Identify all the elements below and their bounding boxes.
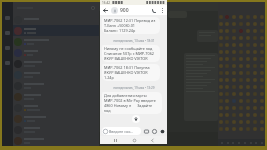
button[interactable]: Attach file bbox=[143, 128, 149, 134]
button[interactable]: Emoji bbox=[224, 76, 230, 83]
button[interactable]: Emoji bbox=[230, 118, 237, 125]
button[interactable]: Emoji bbox=[224, 111, 230, 118]
button[interactable]: Emoji bbox=[218, 13, 224, 20]
button[interactable]: Emoji bbox=[230, 104, 237, 111]
button[interactable]: Emoji bbox=[244, 55, 251, 62]
button[interactable]: Emoji bbox=[230, 90, 237, 97]
button[interactable]: Emoji bbox=[224, 41, 230, 48]
button[interactable]: Send bbox=[159, 128, 165, 134]
button[interactable]: More options bbox=[160, 8, 165, 13]
button[interactable]: Sticker bbox=[151, 128, 157, 134]
button[interactable]: Emoji bbox=[244, 13, 251, 20]
button[interactable]: Emoji bbox=[237, 27, 244, 34]
button[interactable]: Emoji bbox=[218, 20, 224, 27]
button[interactable]: Emoji bbox=[251, 76, 258, 83]
button[interactable]: Emoji bbox=[230, 20, 237, 27]
button[interactable]: Emoji bbox=[237, 118, 244, 125]
button[interactable]: Emoji bbox=[251, 118, 258, 125]
button[interactable]: Emoji bbox=[244, 48, 251, 55]
button[interactable]: Category bbox=[253, 140, 258, 145]
button[interactable]: Emoji bbox=[251, 55, 258, 62]
button[interactable]: Emoji bbox=[218, 55, 224, 62]
button[interactable]: Recents bbox=[111, 136, 119, 144]
button[interactable]: Emoji bbox=[258, 125, 265, 132]
button[interactable]: Emoji bbox=[244, 20, 251, 27]
button[interactable]: Emoji bbox=[244, 97, 251, 104]
button[interactable]: Emoji bbox=[224, 62, 230, 69]
button[interactable]: Emoji bbox=[244, 27, 251, 34]
button[interactable]: Emoji bbox=[237, 55, 244, 62]
button[interactable]: Emoji bbox=[218, 118, 224, 125]
button[interactable]: Emoji bbox=[237, 20, 244, 27]
button[interactable]: Chats bbox=[2, 10, 13, 25]
button[interactable]: Emoji bbox=[258, 76, 265, 83]
button[interactable]: Emoji bbox=[251, 20, 258, 27]
button[interactable] bbox=[13, 47, 99, 58]
button[interactable]: Emoji bbox=[224, 125, 230, 132]
button[interactable]: Emoji bbox=[224, 90, 230, 97]
button[interactable]: Emoji bbox=[237, 97, 244, 104]
button[interactable]: Emoji bbox=[258, 20, 265, 27]
button[interactable]: Emoji bbox=[224, 97, 230, 104]
button[interactable]: Emoji bbox=[224, 104, 230, 111]
button[interactable]: Emoji bbox=[230, 55, 237, 62]
button[interactable]: Settings bbox=[2, 55, 13, 70]
button[interactable]: Emoji bbox=[258, 111, 265, 118]
button[interactable]: Emoji bbox=[258, 27, 265, 34]
button[interactable]: Category bbox=[230, 140, 235, 145]
button[interactable]: Emoji bbox=[218, 48, 224, 55]
button[interactable]: Emoji bbox=[218, 125, 224, 132]
button[interactable]: Emoji bbox=[230, 76, 237, 83]
button[interactable]: Emoji bbox=[230, 13, 237, 20]
button[interactable]: Contacts bbox=[2, 40, 13, 55]
button[interactable]: Category bbox=[248, 140, 253, 145]
button[interactable] bbox=[184, 53, 218, 121]
button[interactable]: Emoji bbox=[237, 41, 244, 48]
button[interactable]: Emoji bbox=[258, 41, 265, 48]
button[interactable]: Emoji bbox=[237, 104, 244, 111]
button[interactable] bbox=[13, 135, 99, 146]
button[interactable]: Emoji bbox=[224, 48, 230, 55]
button[interactable]: Emoji bbox=[218, 76, 224, 83]
button[interactable]: Emoji bbox=[251, 90, 258, 97]
button[interactable]: Emoji bbox=[230, 97, 237, 104]
button[interactable]: МИР-7062 18:31 Покупка 529р bbox=[102, 64, 160, 81]
button[interactable]: Call bbox=[150, 7, 157, 14]
button[interactable]: Emoji bbox=[218, 97, 224, 104]
button[interactable]: Emoji bbox=[237, 62, 244, 69]
button[interactable]: Emoji bbox=[258, 62, 265, 69]
button[interactable]: Emoji bbox=[251, 104, 258, 111]
button[interactable]: Category bbox=[236, 140, 241, 145]
button[interactable]: Emoji bbox=[258, 118, 265, 125]
button[interactable]: Emoji bbox=[251, 111, 258, 118]
button[interactable]: Scroll to bottom bbox=[132, 115, 140, 123]
button[interactable] bbox=[13, 80, 99, 91]
button[interactable]: Emoji bbox=[258, 104, 265, 111]
button[interactable]: Emoji bbox=[258, 90, 265, 97]
button[interactable]: Emoji bbox=[251, 27, 258, 34]
button[interactable] bbox=[13, 14, 99, 25]
button[interactable]: Никому не сообщайте код (13): bbox=[102, 45, 160, 62]
button[interactable]: Emoji bbox=[251, 62, 258, 69]
button[interactable]: МИР-7062 12:31 Перевод из bbox=[102, 17, 160, 34]
button[interactable] bbox=[13, 102, 99, 113]
button[interactable]: Emoji bbox=[218, 83, 224, 90]
button[interactable]: Emoji bbox=[244, 111, 251, 118]
button[interactable]: Back bbox=[148, 136, 156, 144]
button[interactable]: Emoji bbox=[230, 83, 237, 90]
button[interactable] bbox=[13, 113, 99, 124]
button[interactable]: Emoji bbox=[251, 13, 258, 20]
button[interactable]: Emoji bbox=[218, 41, 224, 48]
button[interactable]: Emoji bbox=[218, 27, 224, 34]
button[interactable]: Emoji bbox=[251, 34, 258, 41]
button[interactable]: Emoji bbox=[244, 125, 251, 132]
button[interactable]: Emoji bbox=[244, 41, 251, 48]
button[interactable]: Emoji bbox=[244, 90, 251, 97]
button[interactable]: Home bbox=[130, 136, 138, 144]
button[interactable]: Emoji bbox=[258, 83, 265, 90]
button[interactable]: Category bbox=[259, 140, 264, 145]
button[interactable]: Emoji bbox=[258, 55, 265, 62]
button[interactable]: Emoji bbox=[237, 48, 244, 55]
button[interactable] bbox=[13, 91, 99, 102]
